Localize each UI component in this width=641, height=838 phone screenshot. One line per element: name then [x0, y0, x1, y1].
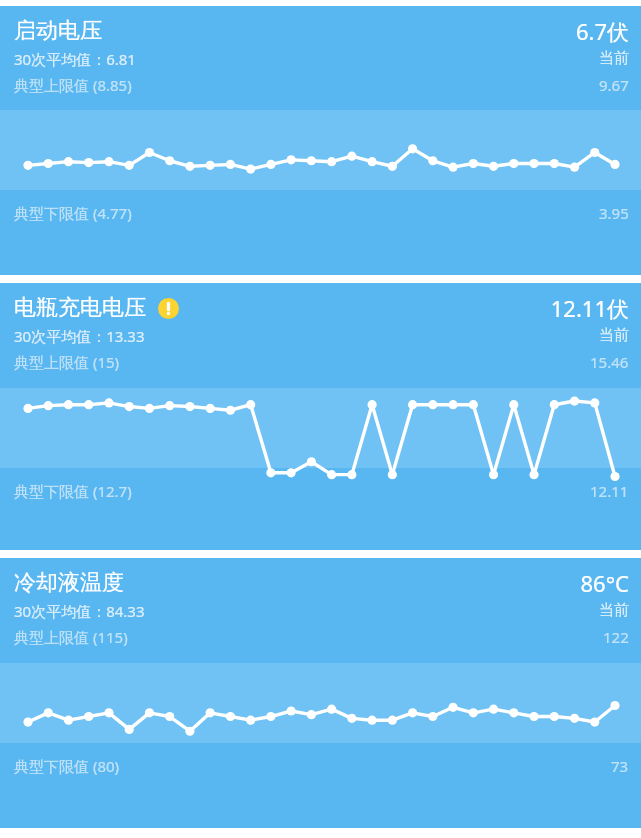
staticText: 典型下限值 (80) [14, 756, 120, 776]
button[interactable]: 启动电压 [0, 6, 641, 275]
staticText: 86°C [580, 568, 629, 598]
staticText: 当前 [599, 601, 629, 620]
staticText: 启动电压 [14, 17, 102, 45]
staticText: 30次平均值：84.33 [14, 601, 145, 621]
staticText: 12.11 [590, 481, 629, 501]
staticText: 122 [603, 627, 629, 647]
staticText: 73 [611, 756, 629, 776]
staticText: 当前 [599, 49, 629, 68]
staticText: 15.46 [590, 352, 629, 372]
staticText: 典型下限值 (12.7) [14, 481, 132, 501]
staticText: 电瓶充电电压 [14, 294, 146, 322]
staticText: 30次平均值：13.33 [14, 326, 145, 346]
button[interactable]: 冷却液温度 [0, 558, 641, 828]
staticText: 当前 [599, 326, 629, 345]
staticText: 典型上限值 (115) [14, 627, 128, 647]
staticText: 典型下限值 (4.77) [14, 203, 132, 223]
staticText: 9.67 [599, 75, 629, 95]
staticText: 6.7伏 [575, 16, 629, 46]
staticText: 3.95 [599, 203, 629, 223]
staticText: 30次平均值：6.81 [14, 49, 136, 69]
other: 警告 [158, 298, 179, 319]
staticText: 冷却液温度 [14, 569, 124, 597]
staticText: 典型上限值 (15) [14, 352, 120, 372]
staticText: 典型上限值 (8.85) [14, 75, 132, 95]
button[interactable]: 电瓶充电电压 [0, 283, 641, 550]
staticText: 12.11伏 [550, 293, 629, 323]
